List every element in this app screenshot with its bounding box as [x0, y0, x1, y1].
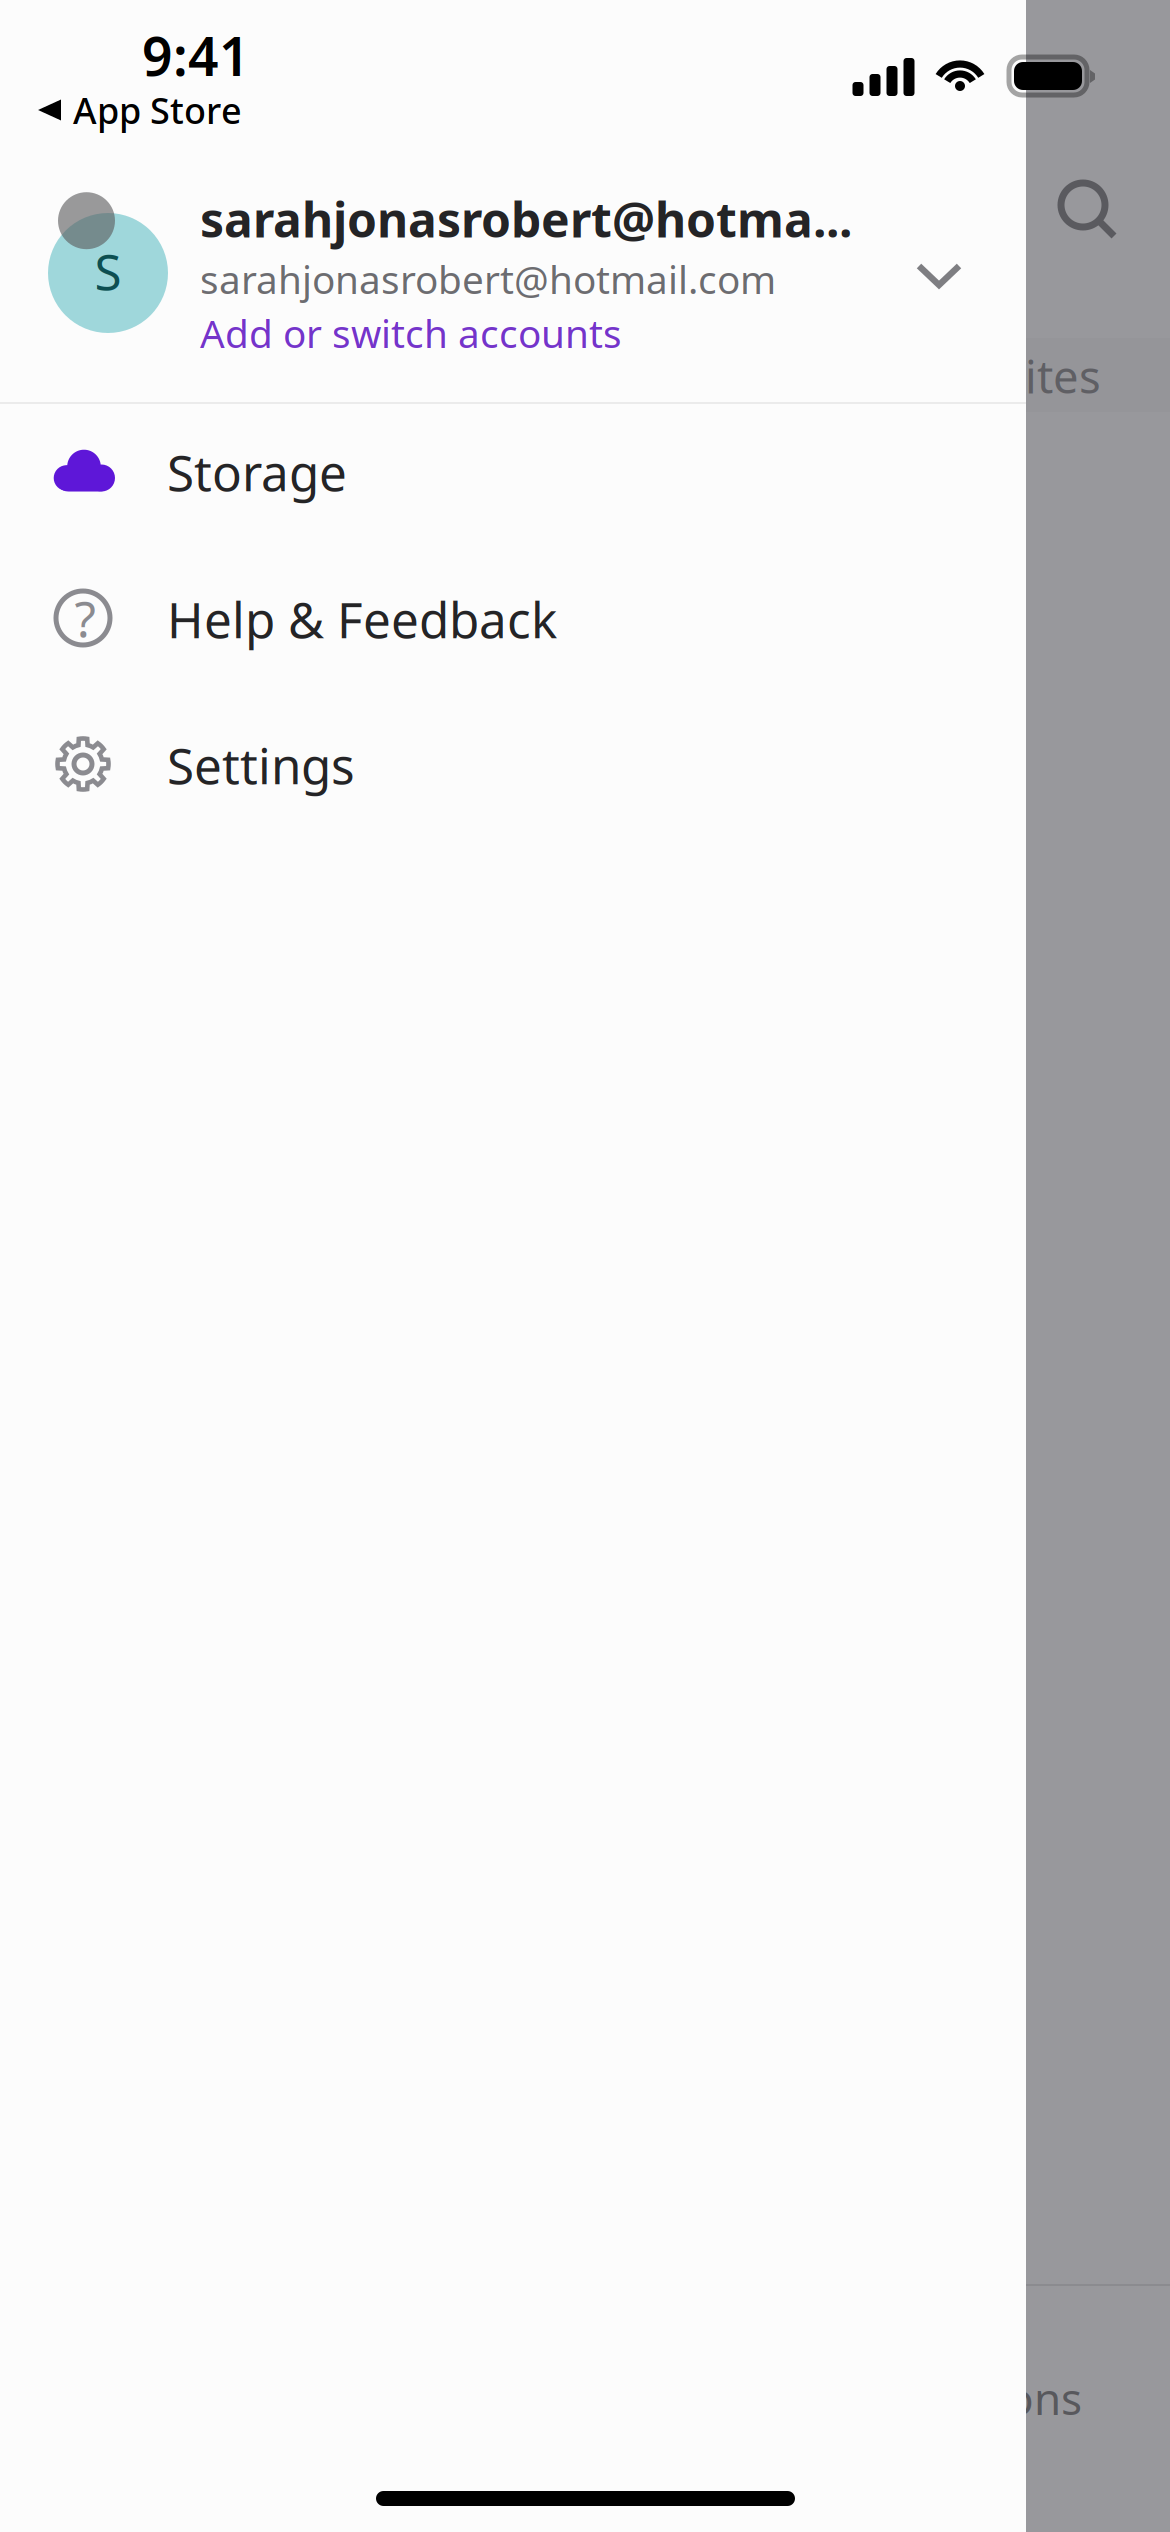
button[interactable]: ?	[0, 546, 1026, 692]
staticText: 9:41	[142, 20, 250, 91]
button[interactable]: Search	[1040, 162, 1136, 258]
button[interactable]: Storage	[0, 399, 1026, 545]
staticText: Settings	[167, 732, 355, 798]
button[interactable]: App Store	[38, 86, 268, 134]
staticText: Actions	[931, 2369, 1082, 2427]
staticText: sarahjonasrobert@hotmail.com	[200, 253, 776, 305]
staticText: S	[94, 238, 121, 304]
button[interactable]: Favorites	[0, 348, 1101, 404]
staticText: Favorites	[907, 346, 1101, 406]
button[interactable]: Settings	[0, 692, 1026, 838]
staticText: App Store	[73, 86, 242, 134]
staticText: ?	[74, 585, 95, 651]
staticText: Help & Feedback	[167, 586, 557, 652]
button[interactable]: Actions	[0, 2370, 1082, 2426]
button[interactable]: S	[0, 152, 1026, 400]
staticText: Add or switch accounts	[200, 307, 622, 359]
staticText: Storage	[167, 439, 347, 505]
staticText: sarahjonasrobert@hotma...	[200, 187, 852, 251]
